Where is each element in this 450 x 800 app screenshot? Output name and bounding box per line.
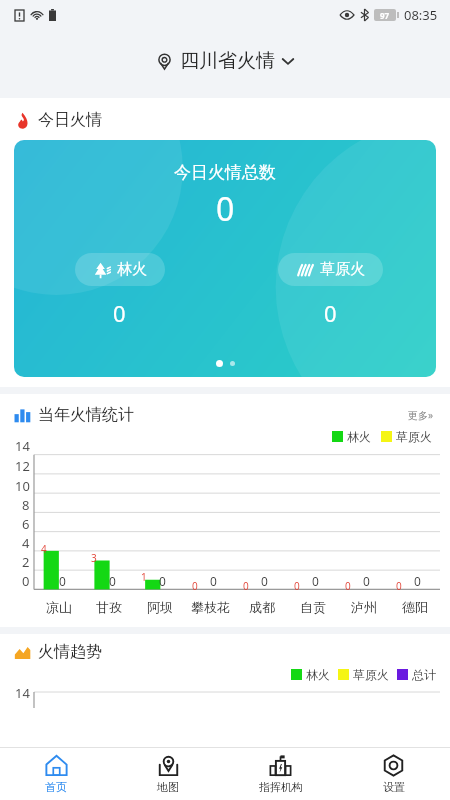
button[interactable]: 林火	[75, 253, 165, 286]
staticText: 今日火情总数	[174, 162, 276, 183]
staticText: 0	[312, 573, 319, 589]
staticText: 今日火情	[38, 110, 102, 130]
staticText: 0	[345, 579, 351, 593]
staticText: 甘孜	[96, 599, 122, 615]
staticText: 2	[22, 553, 30, 571]
button[interactable]: 地图	[112, 748, 224, 800]
staticText: 8	[22, 496, 30, 514]
staticText: 攀枝花	[191, 599, 230, 615]
staticText: 林火	[117, 260, 147, 279]
staticText: 0	[109, 573, 116, 589]
staticText: 0	[59, 573, 66, 589]
staticText: 0	[192, 579, 198, 593]
staticText: 草原火	[396, 429, 432, 444]
staticText: 6	[22, 515, 30, 533]
button[interactable]: 草原火	[278, 253, 383, 286]
staticText: 4	[41, 542, 47, 556]
button[interactable]: 设置	[337, 748, 450, 800]
staticText: 阿坝	[147, 599, 173, 615]
button[interactable]: 今日火情总数	[14, 140, 436, 377]
staticText: 草原火	[353, 667, 389, 682]
staticText: 火情趋势	[38, 642, 102, 662]
staticText: 泸州	[351, 599, 377, 615]
staticText: 更多»	[408, 408, 434, 422]
staticText: 4	[22, 534, 30, 552]
staticText: 四川省火情	[180, 49, 275, 73]
button[interactable]: 更多»	[404, 404, 438, 426]
staticText: 地图	[157, 780, 179, 794]
button[interactable]: 首页	[0, 748, 112, 800]
staticText: 3	[91, 551, 97, 565]
staticText: 成都	[249, 599, 275, 615]
staticText: 首页	[45, 780, 67, 794]
staticText: 0	[363, 573, 370, 589]
staticText: 0	[294, 579, 300, 593]
staticText: 97	[380, 10, 390, 21]
staticText: 1	[141, 570, 147, 584]
staticText: 草原火	[320, 260, 365, 279]
staticText: 0	[210, 573, 217, 589]
button[interactable]: 指挥机构	[224, 748, 337, 800]
staticText: 自贡	[300, 599, 326, 615]
staticText: 德阳	[402, 599, 428, 615]
staticText: 0	[261, 573, 268, 589]
staticText: 0	[159, 573, 166, 589]
staticText: 0	[324, 298, 337, 328]
button[interactable]: 四川省火情	[144, 43, 307, 79]
staticText: 林火	[306, 667, 330, 682]
staticText: 0	[414, 573, 421, 589]
staticText: 14	[15, 684, 30, 702]
staticText: 0	[396, 579, 402, 593]
staticText: 0	[113, 298, 126, 328]
staticText: 0	[243, 579, 249, 593]
staticText: 凉山	[46, 599, 72, 615]
staticText: 10	[15, 477, 30, 495]
staticText: 林火	[347, 429, 371, 444]
staticText: 08:35	[404, 6, 438, 24]
staticText: 指挥机构	[259, 780, 303, 794]
staticText: 当年火情统计	[38, 405, 134, 425]
staticText: 0	[22, 572, 30, 590]
staticText: 14	[15, 437, 30, 455]
staticText: 12	[15, 457, 30, 475]
staticText: 0	[216, 187, 235, 231]
staticText: 设置	[383, 780, 405, 794]
staticText: 总计	[412, 667, 436, 682]
